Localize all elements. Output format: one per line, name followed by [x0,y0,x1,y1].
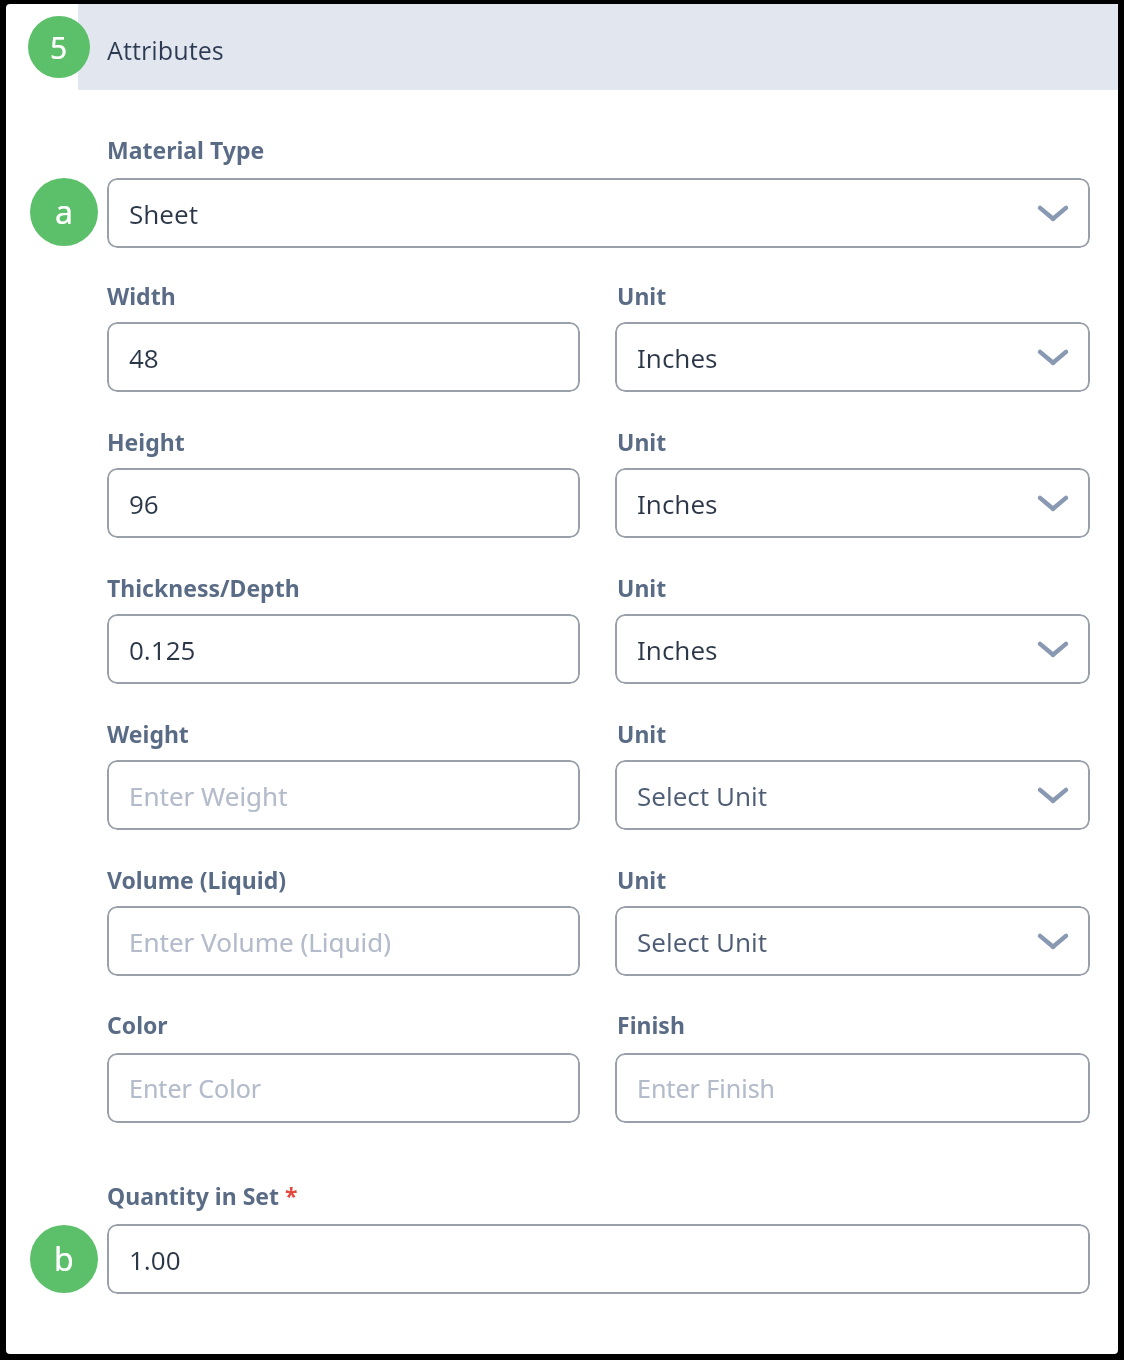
staticText: Inches [637,486,718,521]
staticText: Enter Color [129,1071,262,1105]
button[interactable]: Weight [107,760,580,830]
button[interactable]: Volume (Liquid) [107,906,580,976]
staticText: Unit [617,718,667,749]
staticText: Select Unit [637,778,768,813]
staticText: Weight [107,718,189,749]
button[interactable]: Color [107,1053,580,1123]
staticText: Enter Weight [129,778,288,813]
button[interactable]: Unit [615,614,1090,684]
staticText: Enter Volume (Liquid) [129,924,392,959]
staticText: a [55,190,73,234]
staticText: Height [107,426,185,457]
other: Step a [30,178,98,246]
button[interactable]: Height [107,468,580,538]
staticText: Finish [617,1009,685,1040]
staticText: Attributes [107,33,224,67]
button[interactable]: Finish [615,1053,1090,1123]
staticText: 1.00 [129,1242,181,1277]
other: Step 5 [28,16,90,78]
staticText: Thickness/Depth [107,572,300,603]
staticText: Width [107,280,176,311]
staticText: Color [107,1009,168,1040]
button[interactable]: Width [107,322,580,392]
button[interactable]: Unit [615,322,1090,392]
staticText: 48 [129,340,159,375]
staticText: Inches [637,340,718,375]
staticText: 5 [50,27,68,68]
staticText: Sheet [129,196,199,231]
button[interactable]: Unit [615,468,1090,538]
staticText: Unit [617,572,667,603]
button[interactable]: Quantity in Set [107,1224,1090,1294]
staticText: Unit [617,280,667,311]
staticText: Quantity in Set * [107,1180,298,1211]
staticText: Inches [637,632,718,667]
button[interactable]: Material Type [107,178,1090,248]
staticText: 0.125 [129,632,196,667]
other: Step b [30,1225,98,1293]
staticText: Select Unit [637,924,768,959]
staticText: Unit [617,426,667,457]
button[interactable]: Unit [615,760,1090,830]
button[interactable]: Unit [615,906,1090,976]
button[interactable]: Thickness/Depth [107,614,580,684]
staticText: Material Type [107,134,265,165]
staticText: Volume (Liquid) [107,864,287,895]
staticText: Enter Finish [637,1071,776,1105]
staticText: 96 [129,486,159,521]
staticText: b [54,1237,74,1281]
staticText: Unit [617,864,667,895]
